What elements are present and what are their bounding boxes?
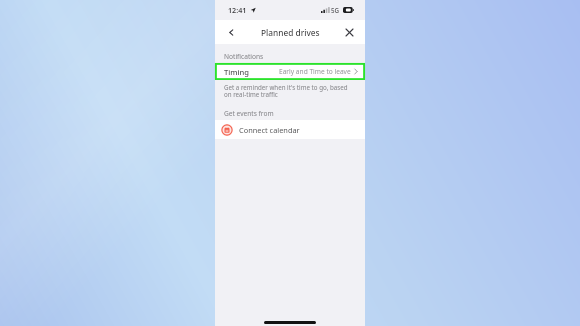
staticText: 12:41 <box>228 5 247 15</box>
button[interactable]: Timing <box>215 63 365 80</box>
staticText: Early and Time to leave <box>279 67 351 76</box>
staticText: Get events from <box>224 109 274 118</box>
staticText: 5G <box>331 6 340 14</box>
staticText: Notifications <box>224 52 264 61</box>
staticText: Timing <box>224 67 250 77</box>
staticText: Connect calendar <box>239 125 300 135</box>
staticText: Get a reminder when it's time to go, bas… <box>224 83 356 99</box>
button[interactable]: Close <box>341 24 357 40</box>
button[interactable]: Connect calendar <box>215 120 365 139</box>
button[interactable]: Back <box>223 24 239 40</box>
staticText: Planned drives <box>261 27 320 38</box>
